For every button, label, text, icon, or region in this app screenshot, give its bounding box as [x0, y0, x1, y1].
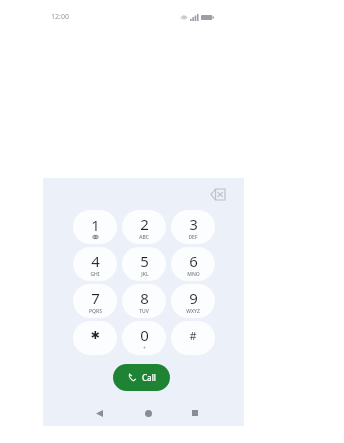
- button[interactable]: Call: [113, 364, 170, 391]
- staticText: 2: [140, 214, 149, 234]
- staticText: WXYZ: [186, 308, 200, 315]
- button[interactable]: 3: [171, 210, 215, 244]
- staticText: 6: [189, 251, 198, 271]
- button[interactable]: #: [171, 321, 215, 355]
- button[interactable]: 1: [73, 210, 117, 244]
- staticText: TUV: [139, 308, 149, 315]
- staticText: 12:00: [51, 12, 69, 22]
- staticText: GHI: [90, 271, 100, 278]
- button[interactable]: 6: [171, 247, 215, 281]
- staticText: DEF: [188, 234, 198, 241]
- staticText: ✱: [90, 329, 100, 342]
- button[interactable]: 8: [122, 284, 166, 318]
- button[interactable]: 9: [171, 284, 215, 318]
- staticText: +: [143, 345, 146, 352]
- button[interactable]: Back: [82, 400, 116, 426]
- button[interactable]: 4: [73, 247, 117, 281]
- staticText: 4: [91, 251, 100, 271]
- button[interactable]: 0: [122, 321, 166, 355]
- button[interactable]: Recent apps: [178, 400, 212, 426]
- staticText: PQRS: [89, 308, 102, 315]
- staticText: #: [189, 328, 197, 343]
- button[interactable]: 7: [73, 284, 117, 318]
- staticText: 3: [189, 214, 198, 234]
- staticText: MNO: [187, 271, 200, 278]
- staticText: ABC: [139, 234, 149, 241]
- staticText: JKL: [141, 271, 149, 278]
- button[interactable]: Home: [131, 400, 165, 426]
- button[interactable]: 2: [122, 210, 166, 244]
- staticText: 8: [140, 288, 149, 308]
- staticText: 5: [140, 251, 149, 271]
- button[interactable]: ✱: [73, 321, 117, 355]
- button[interactable]: 5: [122, 247, 166, 281]
- button[interactable]: Backspace: [206, 182, 230, 206]
- staticText: 7: [91, 288, 100, 308]
- staticText: 1: [91, 215, 100, 235]
- staticText: 0: [140, 325, 149, 345]
- staticText: Call: [142, 372, 156, 383]
- staticText: 9: [189, 288, 198, 308]
